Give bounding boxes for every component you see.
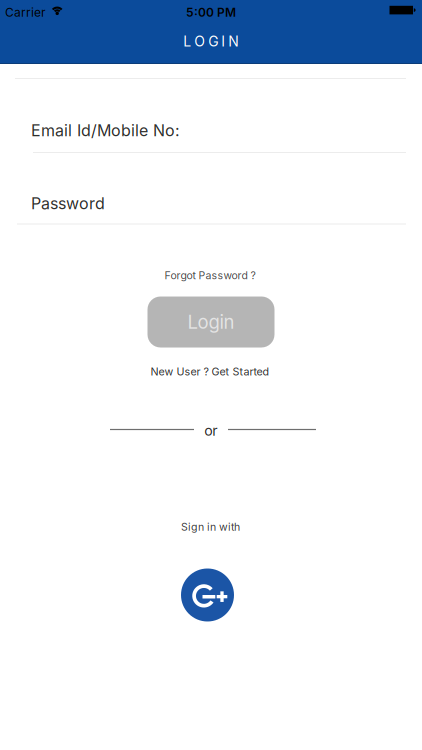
button[interactable]: Forgot Password ? <box>164 269 255 282</box>
button[interactable]: Sign in with Google <box>181 568 234 621</box>
textField[interactable]: Email Id/Mobile No: <box>31 121 422 140</box>
staticText: Sign in with <box>181 521 240 533</box>
staticText: Login <box>187 311 234 333</box>
staticText: 5:00 PM <box>186 5 236 20</box>
staticText: Forgot Password ? <box>164 269 255 282</box>
staticText: New User ? Get Started <box>150 365 269 378</box>
button[interactable]: Login <box>147 296 274 347</box>
staticText: L O G I N <box>183 33 239 50</box>
textField[interactable]: Password <box>31 194 422 213</box>
staticText: Password <box>31 194 105 213</box>
staticText: or <box>204 422 217 439</box>
staticText: Email Id/Mobile No: <box>31 121 180 140</box>
button[interactable]: New User ? Get Started <box>150 365 269 378</box>
staticText: Carrier <box>5 5 46 20</box>
